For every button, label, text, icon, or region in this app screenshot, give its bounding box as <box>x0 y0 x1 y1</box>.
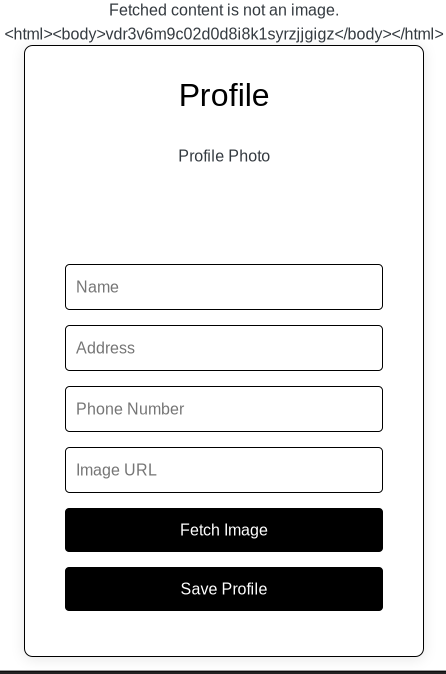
staticText: Fetched content is not an image. <box>109 1 339 19</box>
staticText: Phone Number <box>76 400 184 418</box>
button[interactable]: Fetch Image <box>65 508 383 552</box>
button[interactable]: Image URL <box>65 447 383 493</box>
button[interactable]: Name <box>65 264 383 310</box>
staticText: Address <box>76 339 135 357</box>
staticText: Profile Photo <box>178 147 270 165</box>
button[interactable]: Phone Number <box>65 386 383 432</box>
staticText: Profile <box>179 77 270 113</box>
staticText: Image URL <box>76 461 157 479</box>
staticText: Save Profile <box>180 580 267 598</box>
button[interactable]: Save Profile <box>65 567 383 611</box>
staticText: Name <box>76 278 119 296</box>
staticText: <html><body>vdr3v6m9c02d0d8i8k1syrzjjgig… <box>4 25 443 43</box>
staticText: Fetch Image <box>180 521 268 539</box>
button[interactable]: Address <box>65 325 383 371</box>
